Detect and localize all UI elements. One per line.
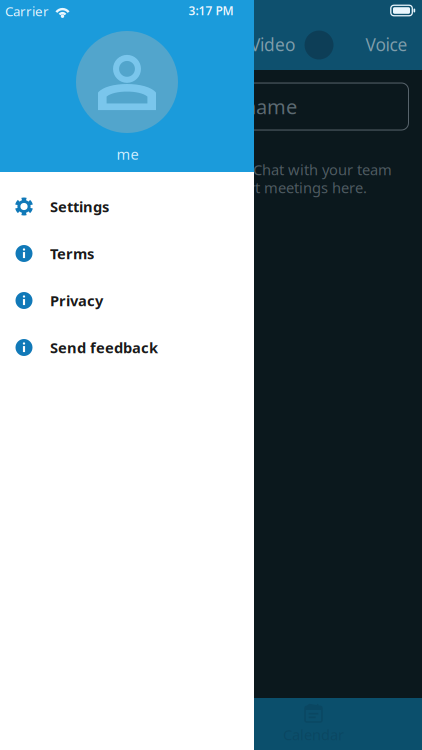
staticText: Carrier	[5, 2, 49, 20]
staticText: Video	[250, 33, 295, 56]
staticText: 3:17 PM	[188, 2, 233, 18]
button[interactable]: Settings	[0, 183, 254, 230]
staticText: and then share files, notes and start me…	[14, 178, 367, 197]
button[interactable]: Terms	[0, 230, 254, 277]
staticText: Settings	[50, 197, 109, 216]
staticText: Terms	[50, 244, 94, 263]
staticText: me	[116, 144, 138, 164]
button[interactable]: Send feedback	[0, 324, 254, 371]
staticText: Enter a name or room name	[35, 93, 297, 120]
staticText: Send feedback	[50, 338, 158, 357]
staticText: Voice	[365, 33, 407, 56]
staticText: Privacy	[50, 291, 103, 310]
button[interactable]: Privacy	[0, 277, 254, 324]
button[interactable]: Voice	[365, 33, 407, 56]
button[interactable]: Video	[250, 33, 295, 56]
staticText: Add a meeting name to get going. Chat wi…	[14, 160, 392, 179]
button[interactable]: Calendar	[208, 698, 419, 750]
